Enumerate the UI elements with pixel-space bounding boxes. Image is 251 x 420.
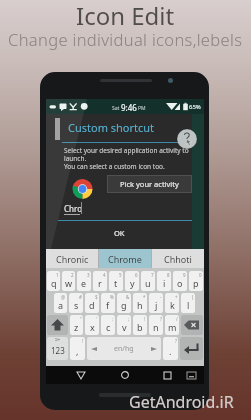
staticText: s [74, 299, 79, 311]
staticText: b [137, 321, 143, 333]
staticText: ! [144, 316, 146, 322]
staticText: Chrome [108, 253, 142, 265]
staticText: z [74, 321, 79, 333]
button[interactable]: $ [85, 293, 99, 313]
staticText: 65% [189, 103, 201, 111]
staticText: 7 [151, 272, 154, 278]
button[interactable]: / [165, 315, 179, 335]
button[interactable]: ? [149, 315, 163, 335]
staticText: o [177, 277, 183, 289]
button[interactable]: & [117, 293, 131, 313]
staticText: Custom shortcut [68, 120, 155, 135]
staticText: l [187, 299, 190, 311]
staticText: 0 [199, 272, 202, 278]
staticText: Icon Edit [76, 0, 175, 32]
button[interactable]: Recents [159, 366, 175, 384]
button[interactable]: 0 [189, 271, 203, 291]
button[interactable]: 2 [62, 271, 75, 291]
button[interactable]: Back [73, 366, 89, 384]
staticText: 3 [87, 272, 90, 278]
staticText: / [176, 316, 178, 322]
staticText: @ [61, 294, 66, 300]
button[interactable]: ! [133, 315, 147, 335]
staticText: # [79, 294, 82, 300]
staticText: 2 [71, 272, 74, 278]
button[interactable]: ? [163, 337, 178, 360]
staticText: 5 [119, 272, 122, 278]
button[interactable]: 8 [157, 271, 171, 291]
button[interactable]: Chhoti [152, 249, 204, 268]
button[interactable]: ' [85, 315, 99, 335]
staticText: t [114, 277, 118, 289]
staticText: v [122, 321, 127, 333]
staticText: ; [128, 316, 130, 322]
staticText: ? [160, 316, 162, 322]
button[interactable]: ; [117, 315, 131, 335]
button[interactable]: 1 [47, 271, 60, 291]
button[interactable]: OK [46, 222, 192, 244]
staticText: 123 [51, 345, 65, 356]
button[interactable]: ! [70, 337, 85, 360]
button[interactable]: 123 [47, 337, 68, 360]
button[interactable]: Chronic [46, 249, 98, 268]
button[interactable]: Home [116, 366, 134, 384]
staticText: h [137, 299, 143, 311]
staticText: g [121, 299, 127, 311]
staticText: Select your desired application activity… [64, 146, 189, 171]
button[interactable]: % [101, 293, 115, 313]
button[interactable]: " [70, 315, 83, 335]
staticText: 4 [103, 272, 106, 278]
button[interactable]: Pick your activity [107, 175, 192, 193]
button[interactable]: Hide keyboard [183, 366, 199, 384]
button[interactable]: * [133, 293, 147, 313]
staticText: Chhoti [164, 253, 192, 265]
staticText: Chronic [56, 253, 89, 265]
staticText: f [106, 299, 110, 311]
staticText: GetAndroid.iR [129, 391, 234, 413]
staticText: Sat [112, 105, 120, 112]
staticText: a [58, 299, 64, 311]
staticText: 9 [183, 272, 186, 278]
staticText: * [143, 294, 146, 300]
button[interactable]: # [69, 293, 83, 313]
button[interactable]: 9 [173, 271, 187, 291]
button[interactable]: en/hg [87, 337, 161, 360]
staticText: ' [96, 316, 98, 322]
button[interactable]: 6 [125, 271, 139, 291]
button[interactable]: : [101, 315, 115, 335]
staticText: p [193, 277, 199, 289]
staticText: " [80, 316, 82, 322]
staticText: j [155, 299, 158, 311]
staticText: y [130, 277, 135, 289]
staticText: r [98, 277, 102, 289]
staticText: % [110, 294, 114, 300]
button[interactable]: del [181, 315, 203, 335]
staticText: 8 [167, 272, 170, 278]
staticText: Chro [64, 203, 82, 214]
staticText: Change individual icons,lebels [8, 28, 243, 50]
button[interactable]: @ [54, 293, 67, 313]
button[interactable]: enter [180, 337, 203, 360]
button[interactable]: 7 [141, 271, 155, 291]
staticText: 9:46 [121, 102, 137, 113]
staticText: OK [114, 228, 125, 238]
button[interactable]: + [165, 293, 179, 313]
button[interactable]: Chrome [99, 249, 151, 268]
button[interactable]: 5 [109, 271, 123, 291]
staticText: u [145, 277, 151, 289]
staticText: d [89, 299, 95, 311]
staticText: ? [175, 338, 177, 344]
staticText: Pick your activity [120, 179, 179, 189]
button[interactable]: ( [181, 293, 195, 313]
staticText: , [76, 345, 79, 357]
button[interactable]: 3 [77, 271, 91, 291]
button[interactable]: shift [47, 315, 68, 335]
staticText: m [168, 321, 177, 333]
staticText: ! [82, 338, 84, 344]
staticText: : [112, 316, 114, 322]
button[interactable]: 4 [93, 271, 107, 291]
staticText: k [170, 299, 175, 311]
staticText: en/hg [114, 344, 134, 354]
staticText: i [163, 277, 166, 289]
button[interactable]: - [149, 293, 163, 313]
